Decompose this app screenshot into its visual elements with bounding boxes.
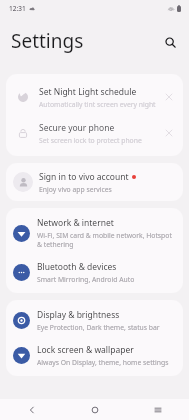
- button[interactable]: Secure your phone: [6, 115, 183, 151]
- button[interactable]: Dismiss suggestion: [161, 89, 177, 105]
- staticText: Enjoy vivo app services: [39, 185, 112, 194]
- button[interactable]: Display & brightness: [6, 303, 183, 338]
- button[interactable]: Dismiss suggestion: [161, 125, 177, 141]
- staticText: Eye Protection, Dark theme, status bar: [37, 323, 160, 332]
- button[interactable]: Lock screen & wallpaper: [6, 338, 183, 373]
- button[interactable]: Sign in to vivo account: [6, 163, 183, 201]
- staticText: Set screen lock to protect phone: [39, 136, 142, 145]
- staticText: Smart Mirroring, Android Auto: [37, 275, 135, 284]
- staticText: Sign in to vivo account: [39, 171, 129, 183]
- button[interactable]: Home: [63, 399, 126, 420]
- staticText: Settings: [11, 28, 84, 54]
- button[interactable]: Search settings: [157, 29, 183, 55]
- button[interactable]: Recent apps: [126, 399, 189, 420]
- staticText: Bluetooth & devices: [37, 261, 117, 273]
- staticText: Lock screen & wallpaper: [37, 344, 134, 356]
- staticText: Display & brightness: [37, 309, 120, 321]
- staticText: 12:31: [9, 4, 26, 13]
- staticText: Secure your phone: [39, 122, 115, 134]
- staticText: Set Night Light schedule: [39, 86, 137, 98]
- button[interactable]: Bluetooth & devices: [6, 255, 183, 290]
- staticText: Network & internet: [37, 217, 114, 229]
- button[interactable]: Network & internet: [6, 211, 183, 255]
- staticText: Always On Display, theme, home settings: [37, 358, 169, 367]
- staticText: Automatically tint screen every night: [39, 100, 156, 109]
- button[interactable]: Back: [0, 399, 63, 420]
- staticText: Wi-Fi, SIM card & mobile network, Hotspo…: [37, 231, 176, 249]
- button[interactable]: Set Night Light schedule: [6, 79, 183, 115]
